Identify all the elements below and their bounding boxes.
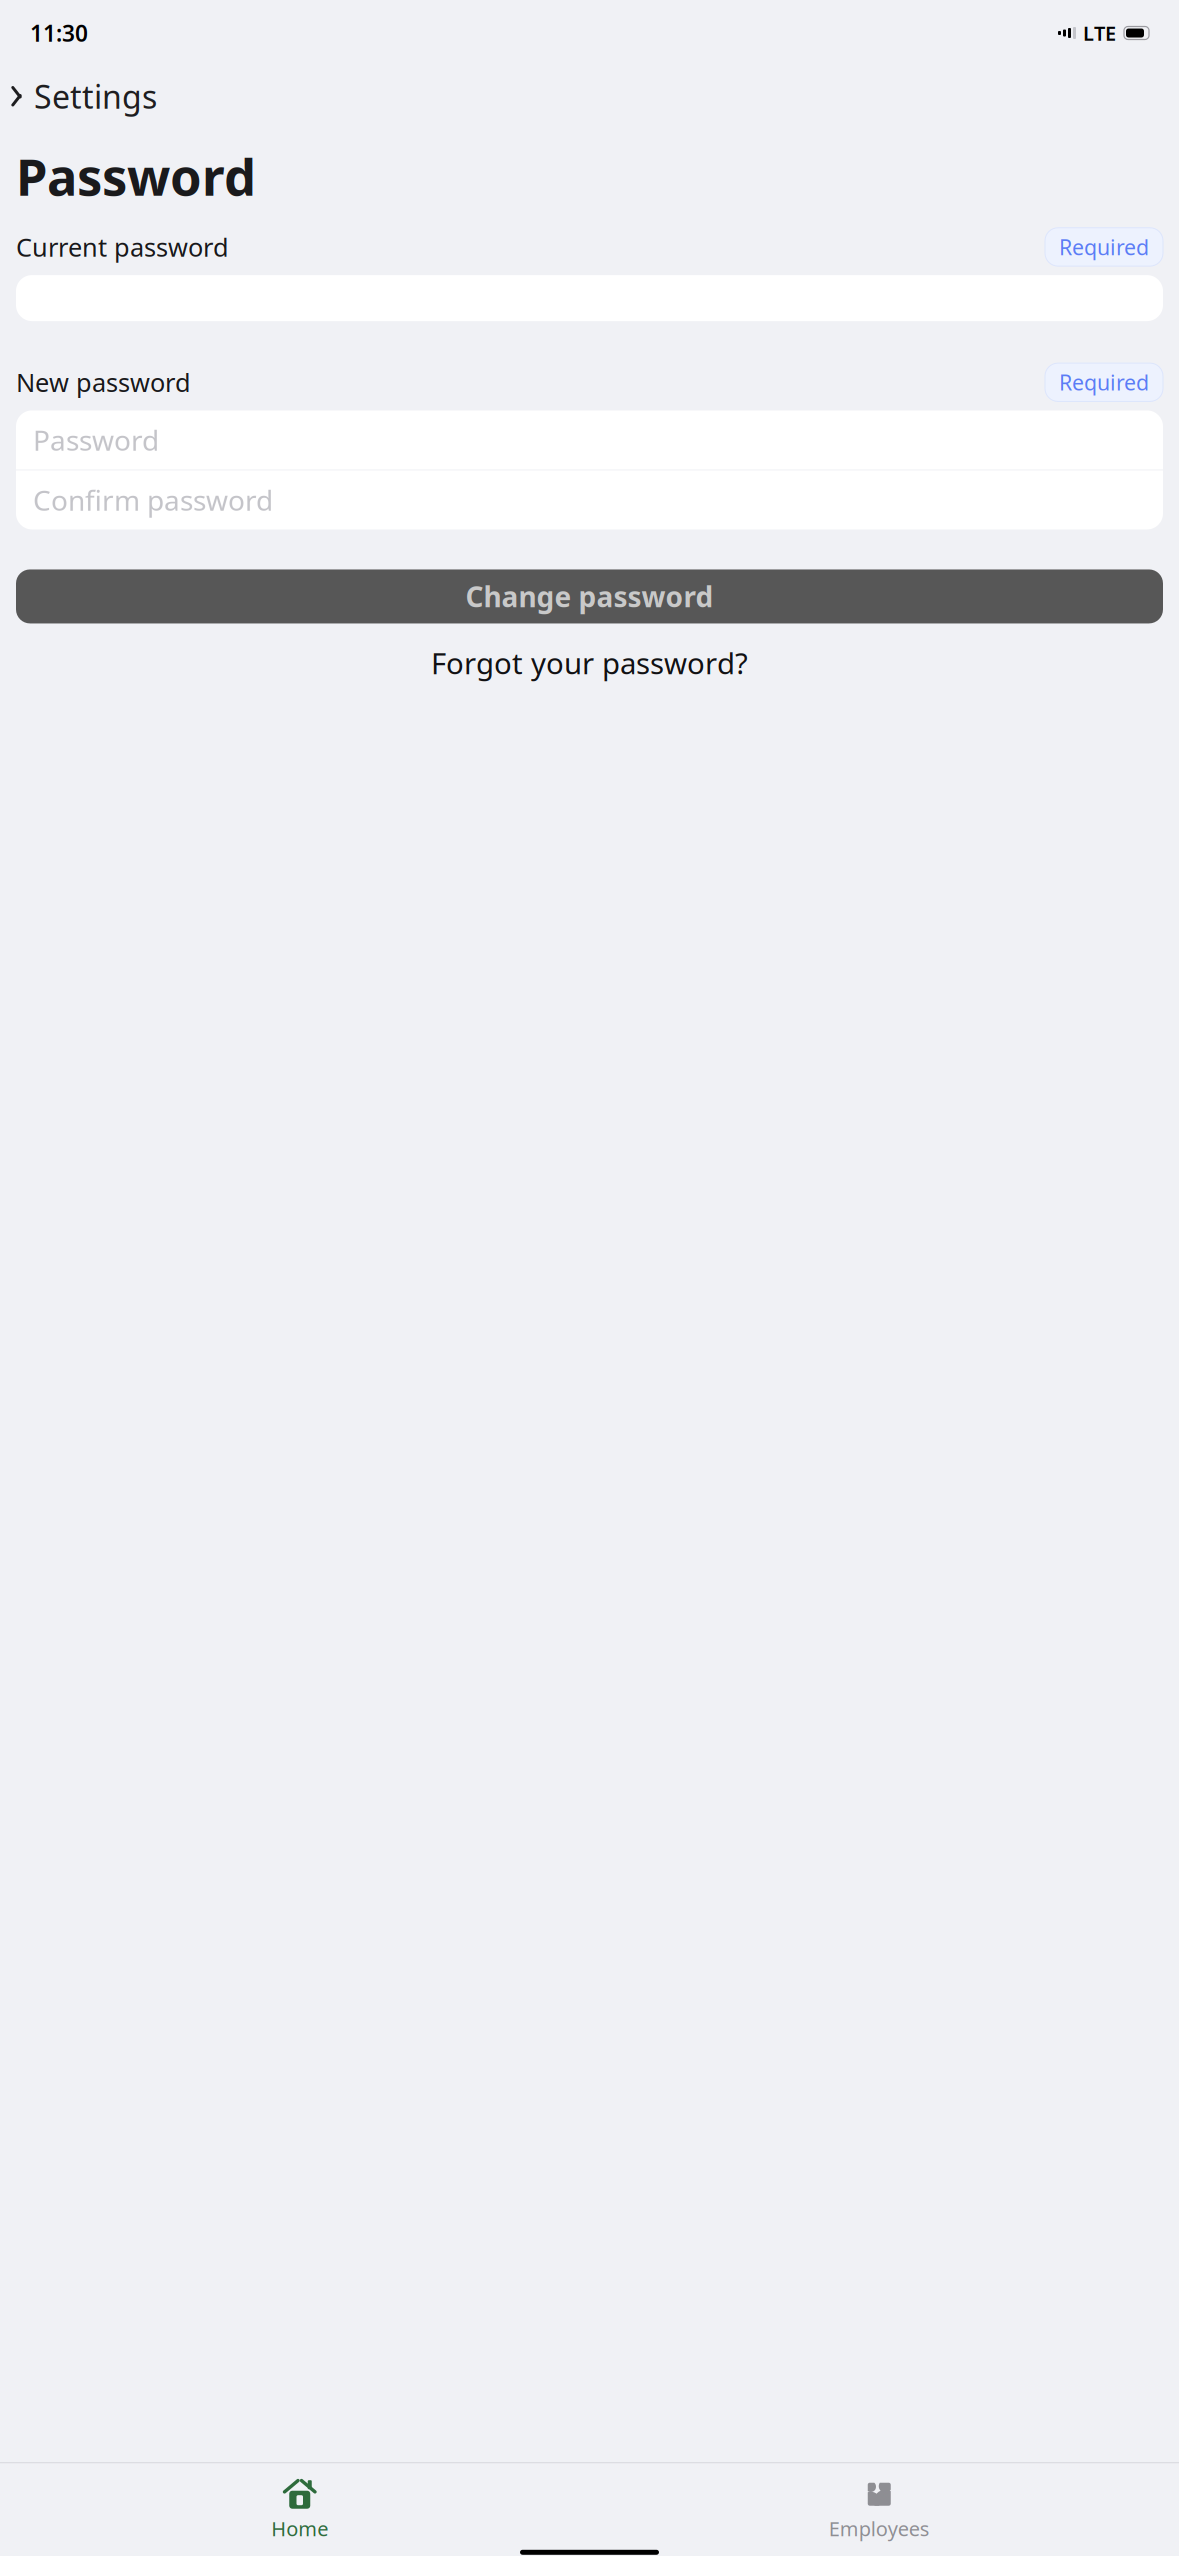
staticText: Settings: [34, 75, 157, 117]
button[interactable]: Home: [10, 2471, 589, 2550]
staticText: New password: [16, 365, 191, 399]
button[interactable]: Employees: [589, 2471, 1169, 2550]
staticText: Required: [1059, 368, 1149, 396]
staticText: Forgot your password?: [431, 643, 748, 682]
staticText: Password: [33, 421, 159, 458]
button[interactable]: Password: [16, 410, 1163, 469]
button[interactable]: Forgot your password?: [419, 637, 760, 688]
button[interactable]: Settings: [4, 68, 163, 124]
staticText: LTE: [1083, 20, 1116, 46]
staticText: Home: [271, 2515, 328, 2542]
staticText: Password: [16, 142, 256, 210]
staticText: Required: [1059, 233, 1149, 261]
staticText: Confirm password: [33, 481, 273, 518]
staticText: Employees: [829, 2515, 930, 2542]
staticText: Current password: [16, 230, 229, 264]
button[interactable]: Confirm password: [16, 470, 1163, 529]
button[interactable]: Change password: [16, 569, 1163, 623]
staticText: 11:30: [30, 18, 88, 48]
staticText: Change password: [465, 578, 713, 615]
